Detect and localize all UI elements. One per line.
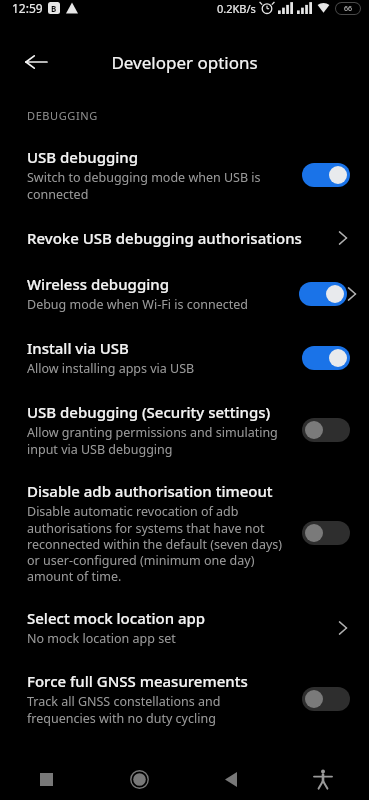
button[interactable]: Back bbox=[14, 40, 58, 84]
staticText: 12:59 bbox=[12, 0, 43, 16]
button[interactable]: Disable adb authorisation timeout bbox=[0, 469, 369, 596]
button[interactable]: USB debugging (Security settings) bbox=[0, 390, 369, 469]
staticText: Install via USB bbox=[27, 338, 129, 358]
button[interactable]: Install via USB bbox=[0, 325, 369, 390]
staticText: Switch to debugging mode when USB is con… bbox=[27, 169, 292, 202]
staticText: Select mock location app bbox=[27, 608, 206, 628]
staticText: Developer options bbox=[111, 51, 258, 74]
staticText: 66 bbox=[344, 4, 353, 14]
staticText: USB debugging (Security settings) bbox=[27, 402, 271, 422]
button[interactable]: Home bbox=[93, 758, 185, 800]
staticText: Allow installing apps via USB bbox=[27, 360, 195, 377]
button[interactable]: Back bbox=[185, 758, 277, 800]
staticText: 0.2KB/s bbox=[217, 1, 256, 16]
staticText: Revoke USB debugging authorisations bbox=[27, 228, 302, 248]
button[interactable]: Recents bbox=[0, 758, 93, 800]
staticText: Disable automatic revocation of adb auth… bbox=[27, 503, 292, 584]
staticText: Debug mode when Wi-Fi is connected bbox=[27, 296, 248, 313]
staticText: USB debugging bbox=[27, 147, 139, 167]
staticText: Allow granting permissions and simulatin… bbox=[27, 424, 292, 457]
button[interactable]: Accessibility bbox=[277, 758, 369, 800]
staticText: Disable adb authorisation timeout bbox=[27, 481, 273, 501]
button[interactable]: USB debugging bbox=[0, 139, 369, 214]
staticText: DEBUGGING bbox=[27, 108, 98, 123]
staticText: Track all GNSS constellations and freque… bbox=[27, 693, 292, 726]
button[interactable]: Select mock location app bbox=[0, 596, 369, 659]
button[interactable]: Force full GNSS measurements bbox=[0, 659, 369, 738]
button[interactable]: Revoke USB debugging authorisations bbox=[0, 214, 369, 262]
staticText: No mock location app set bbox=[27, 630, 176, 647]
staticText: Wireless debugging bbox=[27, 274, 169, 294]
staticText: B bbox=[51, 3, 57, 14]
button[interactable]: Wireless debugging bbox=[0, 262, 369, 325]
staticText: Force full GNSS measurements bbox=[27, 671, 248, 691]
